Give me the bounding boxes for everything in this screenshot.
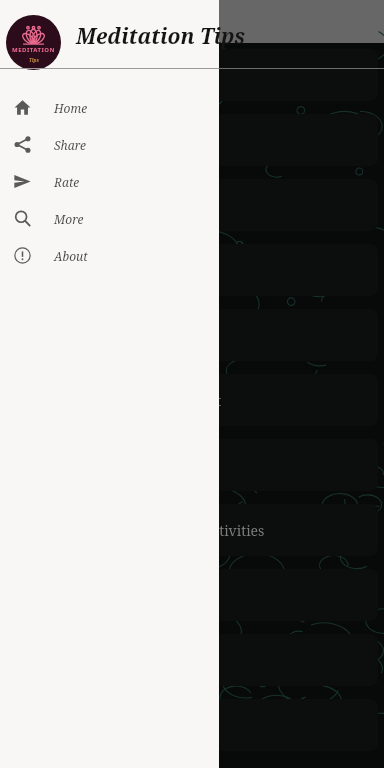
button[interactable]: Share	[0, 126, 219, 163]
button[interactable]: Practice with gratitude	[10, 179, 378, 231]
staticText: Be patient and consistent	[24, 66, 192, 85]
staticText: Bring mindfulness to daily activities	[24, 521, 265, 540]
other: More	[14, 210, 31, 227]
button[interactable]: Join a study or group	[10, 309, 378, 361]
button[interactable]: Rate	[0, 163, 219, 200]
staticText: Practice with gratitude	[24, 196, 177, 215]
button[interactable]: Be patient and consistent	[10, 49, 378, 101]
staticText: Tips	[29, 57, 39, 64]
staticText: MEDITATION	[12, 46, 55, 54]
other: Home	[14, 99, 31, 116]
staticText: Focus on the present moment	[24, 391, 222, 410]
other: Rate	[14, 173, 31, 190]
staticText: Rate	[54, 174, 80, 190]
button[interactable]: Find a quiet place	[10, 114, 378, 166]
other: About	[14, 247, 31, 264]
staticText: Find a quiet place	[24, 131, 143, 150]
button[interactable]: Bring mindfulness to daily activities	[10, 504, 378, 556]
button[interactable]: Use calming music	[10, 699, 378, 751]
staticText: Meditation Tips	[76, 22, 246, 51]
button[interactable]: More	[0, 200, 219, 237]
button[interactable]: Observe your thoughts	[10, 634, 378, 686]
button[interactable]: Walking meditation	[10, 569, 378, 621]
button[interactable]: About	[0, 237, 219, 274]
staticText: Try different techniques	[24, 261, 186, 280]
staticText: More	[54, 211, 84, 227]
staticText: Share	[54, 137, 86, 153]
staticText: Home	[54, 100, 88, 116]
other: Share	[14, 136, 31, 153]
button[interactable]: Focus on the present moment	[10, 374, 378, 426]
button[interactable]: Home	[0, 89, 219, 126]
staticText: About	[54, 248, 88, 264]
button[interactable]: Try different techniques	[10, 244, 378, 296]
button[interactable]: Stay comfortable	[10, 439, 378, 491]
